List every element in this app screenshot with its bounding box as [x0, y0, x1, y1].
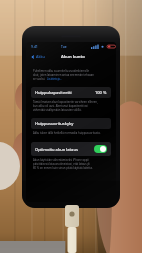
staticText: Optimoitu akun lataus: [35, 147, 78, 152]
button[interactable]: Huippukapasiteetti: [31, 87, 111, 98]
staticText: se vuoksi.: [33, 77, 46, 81]
staticText: Tue: [61, 45, 67, 49]
staticText: 80 % on ennen kuin sinun pitää käyttää l…: [33, 166, 93, 170]
staticText: Huippukapasiteetti: [35, 90, 72, 95]
other: Back: [31, 55, 35, 59]
staticText: akut, joten lataaminen antaa enemmän teh…: [33, 73, 94, 77]
staticText: Puhelimen akku suunniteltu vuodenkierrol…: [33, 69, 89, 73]
button[interactable]: Back: [30, 53, 46, 60]
staticText: vähentää sisältymään latausten välillä.: [33, 108, 82, 112]
button[interactable]: Huippusuorituskyky: [31, 118, 111, 129]
button[interactable]: Lisätietoja...: [47, 77, 63, 81]
staticText: 100 %: [95, 90, 107, 95]
staticText: Huippusuorituskyky: [35, 121, 74, 126]
staticText: Akun käyttöiän vähentämiseksi iPhone opp…: [33, 158, 89, 162]
button[interactable]: Optimoitu akun lataus: [31, 142, 111, 156]
staticText: Tämä ilmaisee akun kapasiteetin varsihee…: [33, 100, 98, 104]
staticText: Akun kunto: [61, 54, 85, 60]
staticText: Akku tukee tällä hetkellä normaalia huip…: [33, 131, 101, 135]
staticText: Akku: [36, 54, 45, 59]
staticText: kun akku oli uusi. Alentunut kapasiteett…: [33, 104, 88, 108]
other: Optimoitu akun lataus toggle: [94, 145, 107, 153]
staticText: 9.41: [31, 44, 38, 49]
staticText: päivittäisesä latausrutiineistasi, että …: [33, 162, 90, 166]
